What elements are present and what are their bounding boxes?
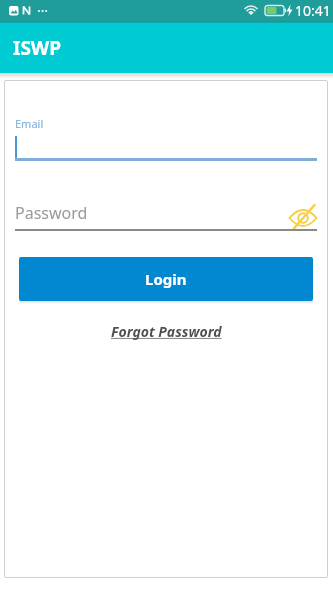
button[interactable]: [289, 205, 317, 231]
button[interactable]: Password: [15, 202, 317, 228]
staticText: ISWP: [13, 35, 62, 61]
staticText: Email: [15, 116, 44, 131]
button[interactable]: Login: [19, 257, 313, 301]
button[interactable]: [15, 131, 317, 158]
staticText: Password: [15, 202, 88, 224]
staticText: 10:41: [295, 1, 331, 20]
button[interactable]: Forgot Password: [111, 322, 222, 341]
staticText: Login: [145, 269, 187, 289]
